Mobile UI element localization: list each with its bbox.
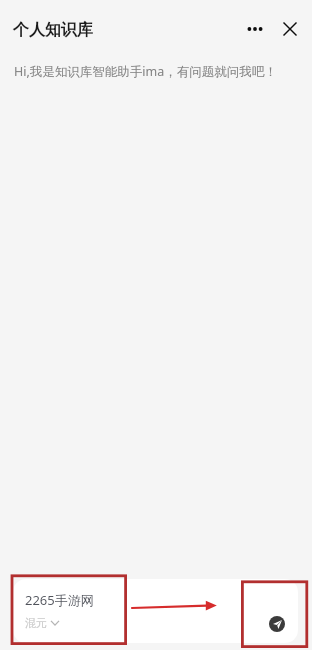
button[interactable]: Close [273, 12, 307, 46]
button[interactable]: 2265手游网 [13, 579, 298, 643]
button[interactable]: 混元 [25, 616, 59, 630]
staticText: 2265手游网 [25, 591, 94, 609]
button[interactable]: Send [269, 616, 285, 632]
staticText: Hi,我是知识库智能助手ima，有问题就问我吧！ [14, 63, 277, 80]
staticText: 混元 [25, 616, 47, 630]
button[interactable]: More options [238, 12, 272, 46]
staticText: 个人知识库 [13, 20, 93, 40]
